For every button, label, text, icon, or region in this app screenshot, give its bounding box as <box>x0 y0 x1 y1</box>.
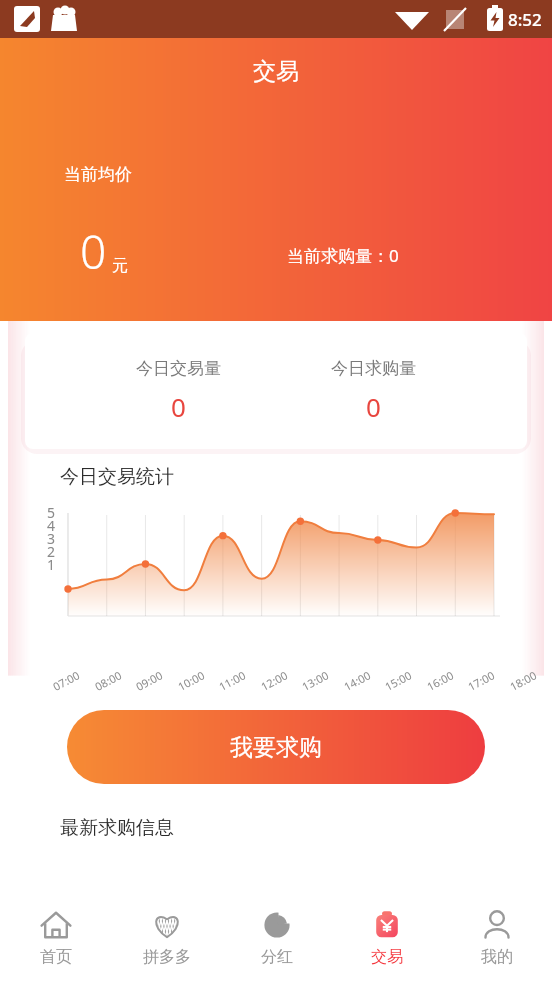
staticText: 5 <box>47 503 56 522</box>
staticText: 17:00 <box>465 667 498 694</box>
staticText: 09:00 <box>133 667 166 694</box>
staticText: 当前求购量：0 <box>287 244 399 267</box>
staticText: 12:00 <box>258 667 291 694</box>
staticText: 3 <box>47 529 56 548</box>
staticText: 今日交易统计 <box>60 465 174 489</box>
staticText: 最新求购信息 <box>60 816 174 840</box>
staticText: 0 <box>80 220 107 283</box>
button[interactable]: 交易 <box>332 893 442 981</box>
staticText: 交易 <box>371 947 403 967</box>
staticText: 11:00 <box>216 667 249 694</box>
button[interactable]: 分红 <box>222 893 332 981</box>
staticText: 13:00 <box>299 667 332 694</box>
staticText: 交易 <box>253 57 299 86</box>
staticText: 10:00 <box>175 667 208 694</box>
staticText: 14:00 <box>341 667 374 694</box>
staticText: 16:00 <box>424 667 457 694</box>
staticText: 8:52 <box>508 8 542 31</box>
button[interactable]: 首页 <box>0 893 111 981</box>
staticText: 07:00 <box>50 667 83 694</box>
staticText: 今日交易量 <box>136 358 221 379</box>
staticText: 我要求购 <box>230 733 322 762</box>
staticText: 首页 <box>40 947 72 967</box>
staticText: 18:00 <box>507 667 540 694</box>
button[interactable]: 拼多多 <box>111 893 222 981</box>
staticText: 15:00 <box>382 667 415 694</box>
staticText: 0 <box>171 389 186 424</box>
staticText: 0 <box>366 389 381 424</box>
staticText: 元 <box>112 256 128 276</box>
button[interactable]: 我的 <box>442 893 552 981</box>
staticText: 分红 <box>261 947 293 967</box>
staticText: 当前均价 <box>64 164 132 185</box>
staticText: 2 <box>47 542 56 561</box>
staticText: 4 <box>47 516 56 535</box>
staticText: 1 <box>47 555 56 574</box>
staticText: 我的 <box>481 947 513 967</box>
staticText: 今日求购量 <box>331 358 416 379</box>
staticText: 拼多多 <box>143 947 191 967</box>
staticText: 08:00 <box>92 667 125 694</box>
button[interactable]: 今日交易量 <box>25 333 527 449</box>
button[interactable]: 我要求购 <box>67 710 485 784</box>
